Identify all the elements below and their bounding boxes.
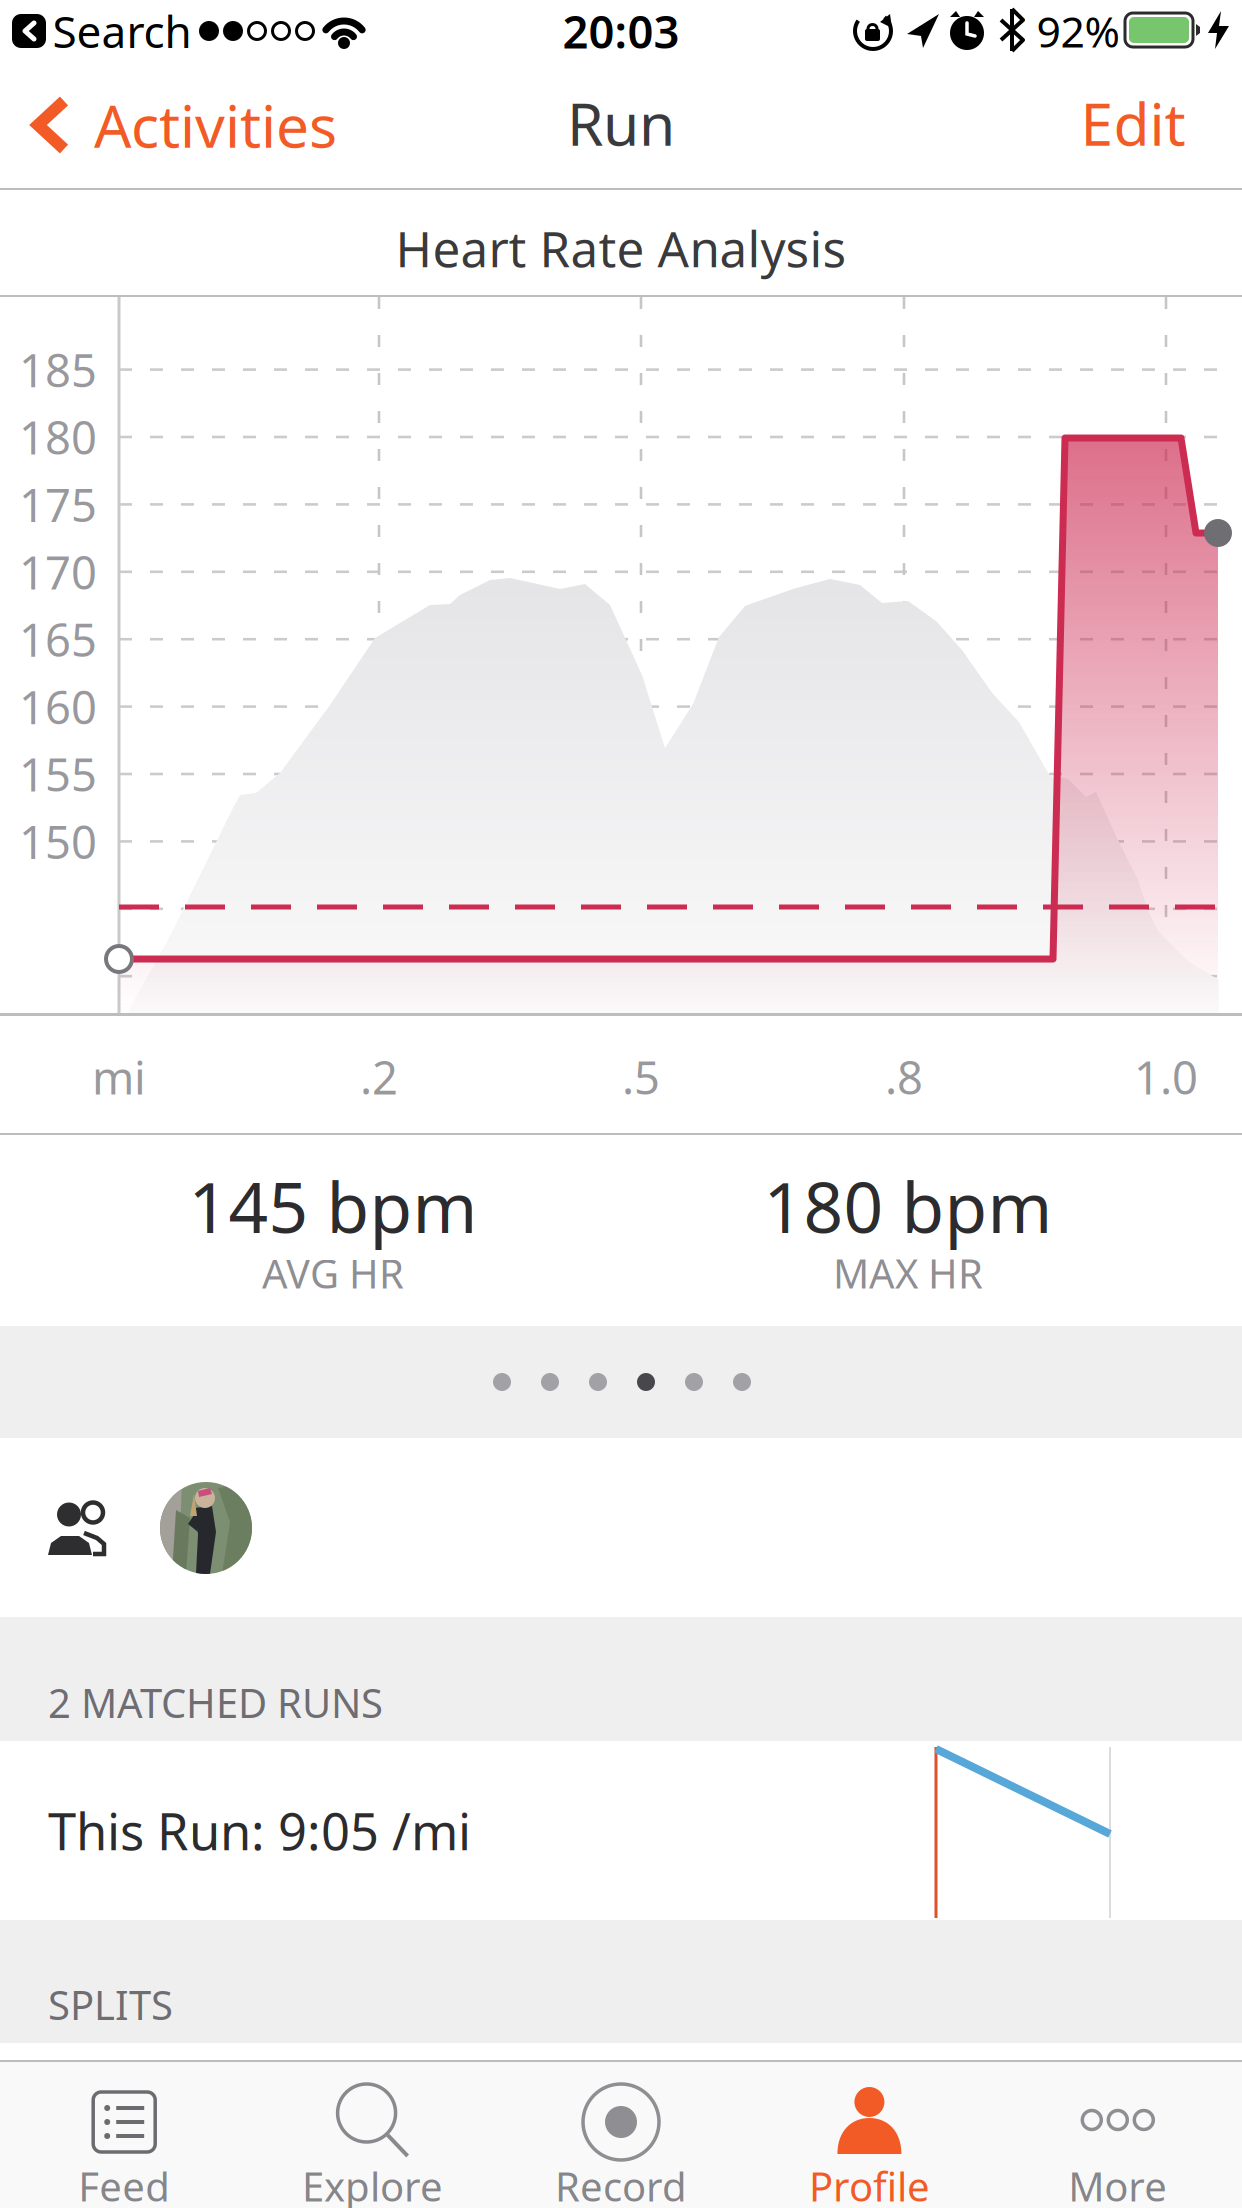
button[interactable]: More: [994, 2060, 1242, 2208]
staticText: Record: [555, 2159, 687, 2208]
staticText: This Run: 9:05 /mi: [48, 1797, 471, 1864]
staticText: AVG HR: [262, 1246, 404, 1299]
staticText: 20:03: [562, 1, 679, 61]
staticText: .5: [622, 1047, 660, 1107]
staticText: Activities: [94, 86, 337, 164]
staticText: More: [1068, 2159, 1167, 2208]
staticText: 160: [19, 676, 97, 737]
staticText: SPLITS: [48, 1978, 173, 2031]
staticText: 185: [19, 339, 97, 400]
button[interactable]: This Run: 9:05 /mi: [0, 1741, 1242, 1920]
staticText: 1.0: [1134, 1047, 1198, 1107]
button[interactable]: Record: [497, 2060, 745, 2208]
button[interactable]: [0, 0, 58, 60]
button[interactable]: Profile: [745, 2060, 994, 2208]
staticText: mi: [92, 1047, 146, 1107]
button[interactable]: Feed: [0, 2060, 248, 2208]
staticText: Edit: [1080, 84, 1185, 162]
button[interactable]: [0, 1438, 92, 1530]
staticText: 180: [19, 407, 97, 467]
button[interactable]: Activities: [0, 60, 337, 190]
button[interactable]: Explore: [248, 2060, 497, 2208]
staticText: 145 bpm: [188, 1160, 477, 1252]
staticText: 2 MATCHED RUNS: [48, 1676, 383, 1729]
staticText: 165: [19, 609, 97, 669]
staticText: Heart Rate Analysis: [395, 215, 846, 281]
staticText: 170: [19, 542, 97, 602]
staticText: Search: [52, 2, 191, 60]
staticText: .2: [360, 1047, 398, 1107]
button[interactable]: Edit: [1080, 84, 1185, 162]
staticText: 155: [19, 744, 97, 804]
staticText: 180 bpm: [763, 1160, 1052, 1252]
staticText: 92%: [1036, 3, 1119, 59]
staticText: MAX HR: [833, 1246, 983, 1299]
staticText: Profile: [809, 2159, 930, 2208]
staticText: 175: [19, 474, 97, 534]
staticText: Run: [567, 84, 675, 162]
staticText: Feed: [78, 2159, 170, 2208]
staticText: 150: [19, 811, 97, 871]
staticText: .8: [885, 1047, 923, 1107]
staticText: Explore: [302, 2159, 443, 2208]
